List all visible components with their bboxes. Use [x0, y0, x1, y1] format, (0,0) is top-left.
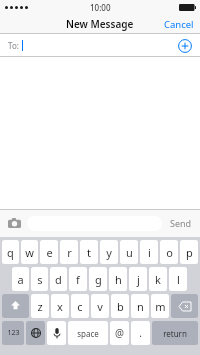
button[interactable]: To: — [0, 34, 200, 57]
staticText: w — [25, 245, 34, 260]
staticText: d — [55, 272, 62, 287]
staticText: j — [137, 272, 140, 287]
button[interactable]: o — [160, 240, 178, 264]
staticText: space — [77, 328, 99, 339]
staticText: g — [95, 272, 102, 287]
button[interactable]: x — [51, 294, 69, 318]
staticText: 123 — [7, 328, 20, 338]
staticText: b — [117, 299, 124, 314]
button[interactable]: a — [12, 267, 29, 291]
button[interactable]: v — [91, 294, 109, 318]
staticText: Cancel — [164, 18, 194, 31]
button[interactable]: m — [151, 294, 169, 318]
button[interactable]: Shift — [2, 294, 29, 318]
button[interactable]: s — [31, 267, 48, 291]
button[interactable]: Dictation — [47, 321, 66, 345]
staticText: New Message — [66, 17, 134, 31]
staticText: l — [177, 272, 180, 287]
staticText: r — [67, 245, 72, 260]
button[interactable]: w — [21, 240, 38, 264]
button[interactable]: r — [60, 240, 78, 264]
button[interactable]: . — [131, 321, 150, 345]
staticText: a — [17, 272, 24, 287]
staticText: h — [115, 272, 122, 287]
staticText: v — [97, 299, 103, 314]
staticText: c — [77, 299, 83, 314]
button[interactable]: f — [69, 267, 87, 291]
staticText: 10:00 — [90, 2, 111, 13]
button[interactable]: space — [68, 321, 108, 345]
button[interactable]: Cancel — [158, 15, 200, 34]
button[interactable]: k — [149, 267, 167, 291]
staticText: e — [46, 245, 53, 260]
button[interactable]: return — [152, 321, 198, 345]
button[interactable]: l — [169, 267, 187, 291]
staticText: k — [155, 272, 161, 287]
staticText: . — [139, 326, 142, 340]
staticText: p — [186, 245, 193, 260]
staticText: f — [76, 272, 80, 287]
button[interactable]: Send — [168, 214, 194, 232]
staticText: s — [37, 272, 43, 287]
button[interactable]: e — [40, 240, 58, 264]
staticText: To: — [8, 40, 19, 51]
staticText: t — [87, 245, 91, 260]
staticText: i — [148, 245, 151, 260]
staticText: Send — [170, 217, 192, 229]
button[interactable]: n — [131, 294, 149, 318]
staticText: @ — [115, 326, 124, 340]
staticText: x — [57, 299, 63, 314]
button[interactable]: Camera — [6, 215, 22, 231]
staticText: n — [137, 299, 144, 314]
button[interactable]: c — [71, 294, 89, 318]
button[interactable]: p — [180, 240, 198, 264]
staticText: o — [166, 245, 173, 260]
button[interactable]: u — [120, 240, 138, 264]
button[interactable]: 123 — [2, 321, 24, 345]
button[interactable]: j — [129, 267, 147, 291]
button[interactable]: Change keyboard — [26, 321, 45, 345]
button[interactable]: y — [100, 240, 118, 264]
button[interactable]: d — [50, 267, 67, 291]
button[interactable]: h — [109, 267, 127, 291]
button[interactable]: b — [111, 294, 129, 318]
button[interactable]: @ — [110, 321, 129, 345]
staticText: m — [155, 299, 166, 314]
button[interactable]: Delete — [171, 294, 198, 318]
button[interactable]: i — [140, 240, 158, 264]
button[interactable]: t — [80, 240, 98, 264]
button[interactable]: q — [2, 240, 19, 264]
staticText: z — [37, 299, 43, 314]
button[interactable]: Add contact — [178, 39, 192, 53]
staticText: u — [126, 245, 133, 260]
button[interactable]: g — [89, 267, 107, 291]
button[interactable]: z — [31, 294, 49, 318]
staticText: q — [7, 245, 14, 260]
staticText: y — [106, 245, 112, 260]
staticText: return — [163, 328, 187, 339]
